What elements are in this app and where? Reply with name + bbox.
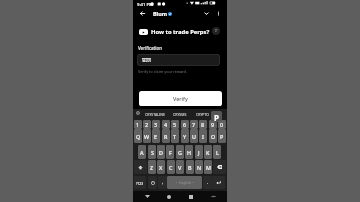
- staticText: S: [151, 149, 154, 156]
- button[interactable]: Recent apps: [183, 191, 199, 202]
- button[interactable]: Home: [161, 191, 177, 202]
- button[interactable]: Space: [167, 176, 202, 189]
- button[interactable]: 9: [209, 120, 217, 129]
- button[interactable]: R: [162, 129, 170, 143]
- staticText: IT: [215, 29, 218, 33]
- button[interactable]: K: [204, 145, 212, 159]
- button[interactable]: A: [138, 145, 146, 159]
- staticText: R: [164, 133, 168, 140]
- staticText: CRYSTALINE: [145, 112, 165, 117]
- button[interactable]: Verify: [139, 91, 222, 106]
- staticText: Blum: [153, 10, 167, 17]
- button[interactable]: O: [209, 129, 217, 143]
- staticText: Y: [183, 133, 187, 140]
- button[interactable]: M: [204, 160, 212, 174]
- button[interactable]: 1: [134, 120, 142, 129]
- button[interactable]: T: [171, 129, 179, 143]
- button[interactable]: E: [152, 129, 160, 143]
- staticText: Z: [150, 164, 154, 171]
- button[interactable]: 0: [218, 120, 226, 129]
- staticText: W: [144, 133, 150, 140]
- button[interactable]: Back: [138, 9, 147, 18]
- button[interactable]: 5: [171, 120, 179, 129]
- staticText: N: [197, 164, 202, 171]
- staticText: 0: [220, 121, 224, 128]
- button[interactable]: Symbols: [134, 176, 146, 189]
- button[interactable]: X: [157, 160, 165, 174]
- button[interactable]: Backspace: [213, 160, 226, 174]
- button[interactable]: P: [218, 129, 226, 143]
- button[interactable]: 6: [181, 120, 189, 129]
- staticText: Q: [136, 133, 141, 140]
- staticText: F: [169, 149, 172, 156]
- staticText: 8: [201, 121, 205, 128]
- button[interactable]: H: [185, 145, 193, 159]
- staticText: 6: [183, 121, 187, 128]
- staticText: ,: [162, 179, 164, 185]
- staticText: T: [173, 133, 177, 140]
- button[interactable]: S: [148, 145, 156, 159]
- button[interactable]: Collapse: [202, 9, 211, 18]
- button[interactable]: W: [143, 129, 151, 143]
- staticText: P: [220, 133, 224, 140]
- button[interactable]: Period: [203, 176, 212, 189]
- button[interactable]: Comma: [158, 176, 167, 189]
- button[interactable]: Back: [139, 191, 155, 202]
- button[interactable]: F: [166, 145, 174, 159]
- button[interactable]: 3: [152, 120, 160, 129]
- button[interactable]: D: [157, 145, 165, 159]
- staticText: I: [202, 133, 204, 140]
- button[interactable]: More options: [214, 9, 223, 18]
- button[interactable]: U: [190, 129, 198, 143]
- staticText: O: [211, 133, 216, 140]
- staticText: ?123: [136, 181, 144, 185]
- staticText: CEN7: [142, 58, 151, 62]
- button[interactable]: 8: [199, 120, 207, 129]
- staticText: 3: [154, 121, 158, 128]
- button[interactable]: B: [186, 160, 194, 174]
- button[interactable]: Emoji: [148, 176, 157, 189]
- button[interactable]: Z: [148, 160, 156, 174]
- staticText: 9:41 PM: [137, 2, 153, 8]
- staticText: X: [159, 164, 163, 171]
- staticText: B: [188, 164, 192, 171]
- button[interactable]: Y: [181, 129, 189, 143]
- staticText: D: [159, 149, 163, 156]
- staticText: CRYSMS: [173, 112, 187, 117]
- button[interactable]: CEN7: [137, 54, 220, 66]
- staticText: K: [206, 149, 210, 156]
- staticText: M: [206, 164, 211, 171]
- staticText: Verify to claim your reward.: [138, 69, 187, 74]
- button[interactable]: Q: [134, 129, 142, 143]
- button[interactable]: V: [176, 160, 184, 174]
- staticText: 9: [211, 121, 215, 128]
- staticText: CRYPTO: [196, 112, 210, 117]
- button[interactable]: Hide keyboard: [205, 191, 221, 202]
- button[interactable]: 2: [143, 120, 151, 129]
- button[interactable]: Open link: [212, 27, 220, 35]
- staticText: P: [214, 112, 219, 123]
- button[interactable]: N: [195, 160, 203, 174]
- button[interactable]: I: [199, 129, 207, 143]
- button[interactable]: How to trade Perps?: [133, 23, 227, 40]
- button[interactable]: Enter: [212, 176, 225, 189]
- button[interactable]: G: [176, 145, 184, 159]
- staticText: 2: [145, 121, 149, 128]
- button[interactable]: Shift: [134, 160, 147, 174]
- staticText: U: [192, 133, 196, 140]
- staticText: English: [179, 180, 191, 185]
- staticText: J: [198, 149, 200, 156]
- staticText: Verify: [173, 95, 188, 102]
- button[interactable]: 4: [162, 120, 170, 129]
- staticText: 7: [192, 121, 196, 128]
- staticText: A: [140, 149, 144, 156]
- button[interactable]: 7: [190, 120, 198, 129]
- staticText: 4: [164, 121, 168, 128]
- staticText: H: [187, 149, 192, 156]
- button[interactable]: J: [195, 145, 203, 159]
- button[interactable]: C: [167, 160, 175, 174]
- staticText: E: [154, 133, 158, 140]
- staticText: 5: [173, 121, 177, 128]
- staticText: .: [207, 179, 209, 185]
- button[interactable]: L: [213, 145, 221, 159]
